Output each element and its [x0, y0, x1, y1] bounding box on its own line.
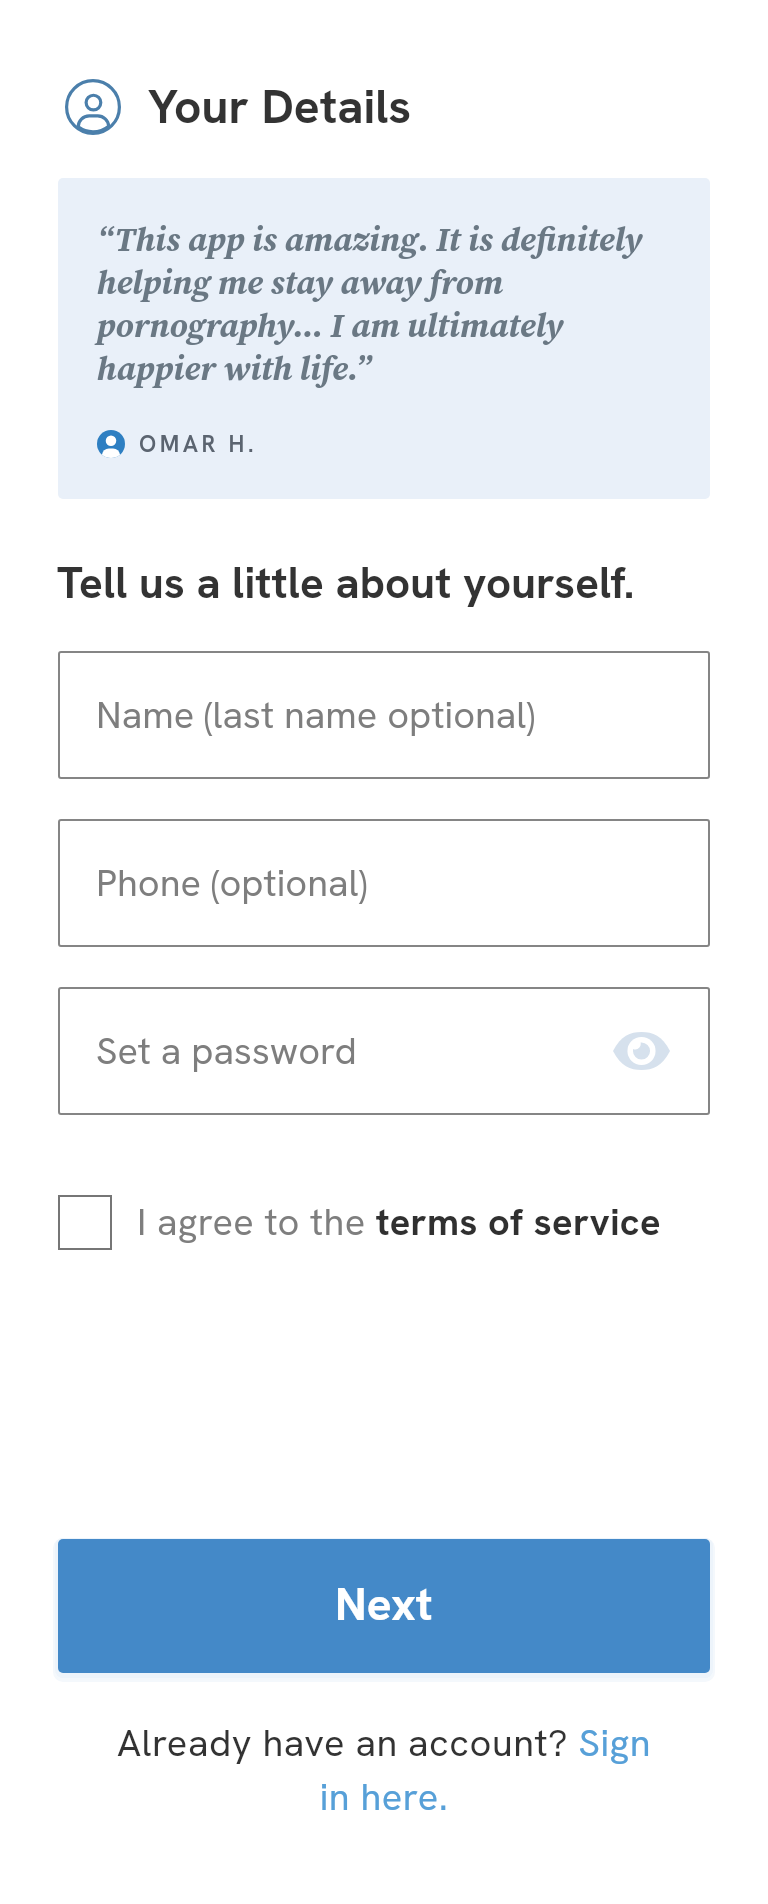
staticText: I agree to the terms of service	[137, 1197, 661, 1247]
staticText: Your Details	[148, 75, 412, 138]
button[interactable]: Already have an account? Sign in here.	[99, 1718, 669, 1822]
button[interactable]: Name (last name optional)	[58, 651, 710, 779]
button[interactable]: Show password	[603, 1021, 679, 1081]
staticText: Already have an account? Sign in here.	[99, 1718, 669, 1822]
staticText: Name (last name optional)	[96, 690, 535, 740]
button[interactable]: Set a password	[58, 987, 710, 1115]
staticText: Set a password	[96, 1026, 357, 1076]
staticText: Phone (optional)	[96, 858, 368, 908]
button[interactable]: I agree to the terms of service	[58, 1192, 661, 1252]
button[interactable]: Your Details	[58, 70, 412, 142]
button[interactable]: Next	[58, 1539, 710, 1673]
staticText: “This app is amazing. It is definitely h…	[97, 216, 657, 392]
staticText: OMAR H.	[139, 429, 257, 459]
staticText: Next	[335, 1574, 433, 1634]
staticText: Tell us a little about yourself.	[57, 554, 635, 611]
button[interactable]: Phone (optional)	[58, 819, 710, 947]
